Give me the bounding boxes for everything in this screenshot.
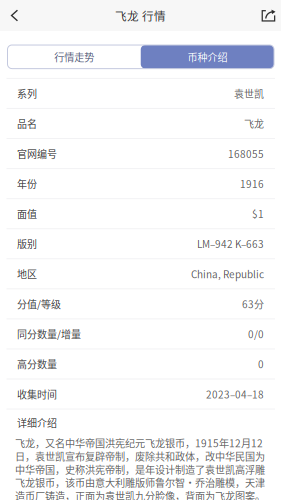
- staticText: 袁世凯: [234, 86, 264, 101]
- staticText: 同分数量/增量: [17, 327, 81, 341]
- button[interactable]: 行情走势: [7, 45, 141, 69]
- button[interactable]: 年份: [0, 169, 281, 199]
- staticText: China, Republic: [191, 267, 264, 281]
- staticText: 面值: [17, 206, 37, 221]
- staticText: 年份: [17, 176, 37, 191]
- staticText: 分值/等级: [17, 297, 61, 311]
- staticText: 63分: [242, 297, 264, 311]
- button[interactable]: 币种介绍: [141, 45, 274, 69]
- button[interactable]: 品名: [0, 109, 281, 139]
- button[interactable]: 高分数量: [0, 349, 281, 379]
- staticText: 详细介绍: [17, 415, 57, 430]
- staticText: 高分数量: [17, 357, 57, 371]
- button[interactable]: 系列: [0, 79, 281, 109]
- staticText: 2023–04–18: [206, 387, 264, 401]
- button[interactable]: 官网编号: [0, 139, 281, 169]
- staticText: 1916: [240, 176, 264, 191]
- staticText: 品名: [17, 116, 37, 131]
- staticText: LM–942 K–663: [197, 236, 264, 251]
- button[interactable]: 分享: [256, 0, 281, 31]
- button[interactable]: 分值/等级: [0, 289, 281, 319]
- staticText: 官网编号: [17, 146, 57, 161]
- staticText: 行情走势: [54, 49, 94, 64]
- button[interactable]: 返回: [0, 0, 29, 31]
- button[interactable]: 同分数量/增量: [0, 319, 281, 349]
- staticText: $1: [252, 206, 264, 221]
- button[interactable]: 收集时间: [0, 379, 281, 410]
- staticText: 飞龙: [244, 116, 264, 131]
- button[interactable]: 地区: [0, 259, 281, 289]
- staticText: 地区: [17, 267, 37, 281]
- button[interactable]: 面值: [0, 199, 281, 229]
- staticText: 版别: [17, 236, 37, 251]
- staticText: 收集时间: [17, 387, 57, 401]
- staticText: 168055: [228, 146, 264, 161]
- staticText: 币种介绍: [187, 49, 227, 64]
- staticText: 0/0: [248, 327, 264, 341]
- staticText: 飞龙，又名中华帝国洪宪纪元飞龙银币，1915年12月12日，袁世凯宣布复辟帝制，…: [15, 436, 265, 500]
- staticText: 飞龙 行情: [115, 7, 166, 24]
- button[interactable]: 版别: [0, 229, 281, 259]
- staticText: 0: [258, 357, 264, 371]
- staticText: 系列: [17, 86, 37, 101]
